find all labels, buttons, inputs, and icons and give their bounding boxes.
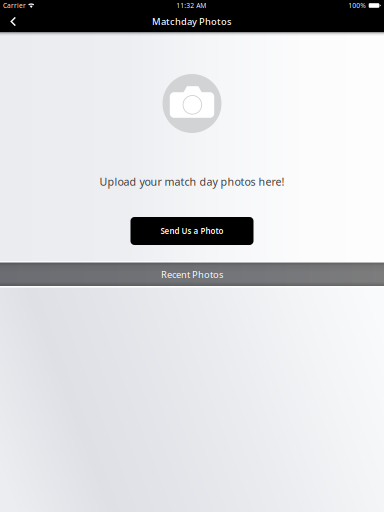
- staticText: Matchday Photos: [152, 15, 232, 28]
- button[interactable]: Send Us a Photo: [130, 217, 253, 245]
- staticText: Recent Photos: [161, 268, 223, 280]
- staticText: Carrier: [3, 1, 26, 10]
- staticText: 11:32 AM: [176, 1, 206, 10]
- staticText: 100%: [348, 1, 366, 10]
- button[interactable]: Back: [0, 11, 26, 32]
- staticText: Upload your match day photos here!: [99, 174, 284, 189]
- staticText: Send Us a Photo: [160, 226, 223, 236]
